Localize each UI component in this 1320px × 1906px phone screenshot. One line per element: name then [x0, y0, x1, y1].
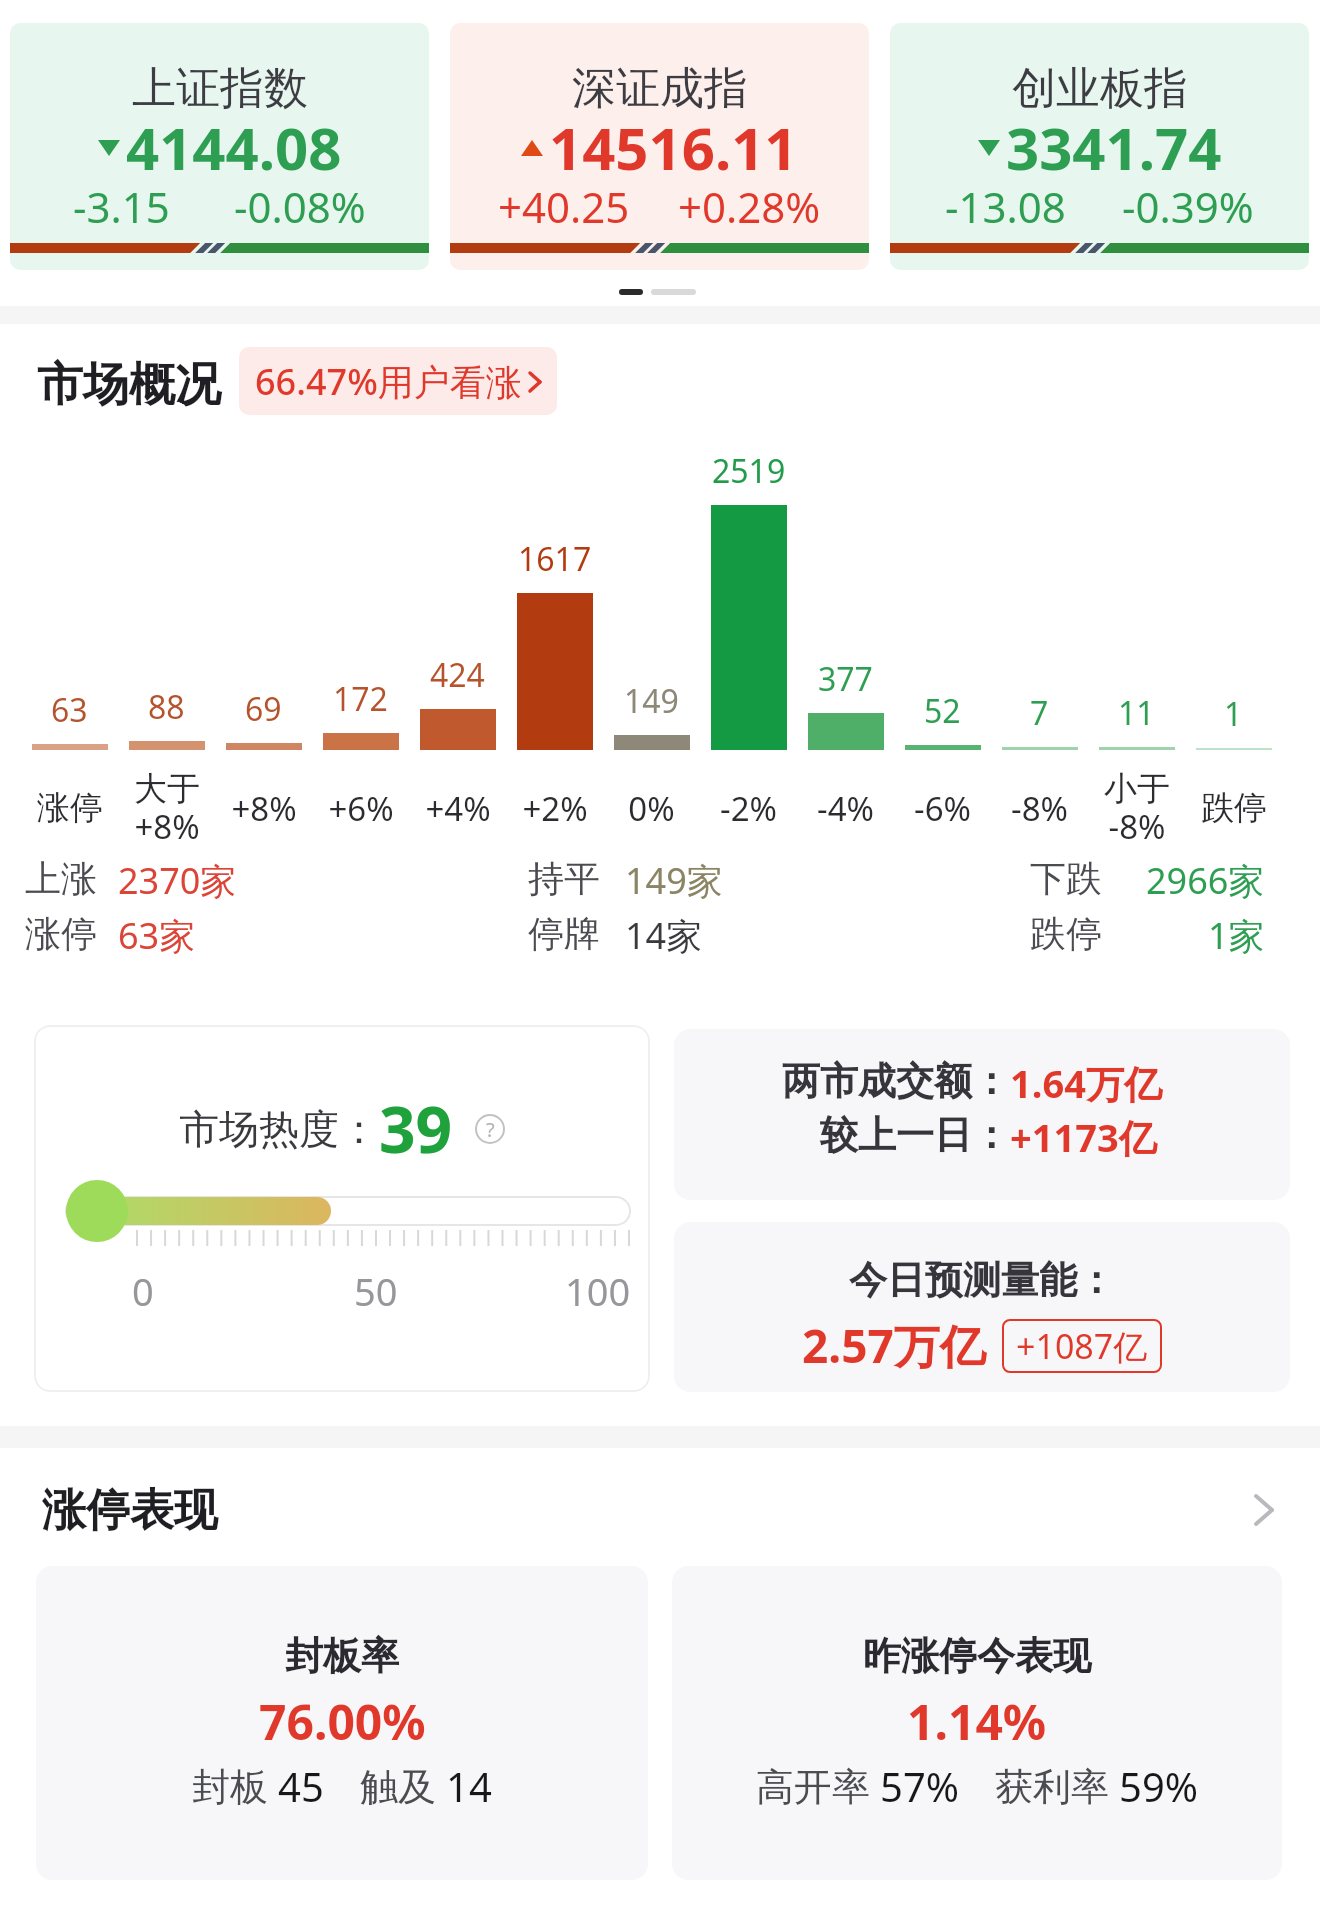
staticText: 1.14%	[907, 1689, 1047, 1754]
staticText: 涨停表现	[42, 1483, 218, 1538]
staticText: 424	[430, 653, 485, 697]
staticText: 上涨	[25, 856, 97, 901]
staticText: 两市成交额：	[782, 1057, 1010, 1105]
staticText: 深证成指	[572, 61, 748, 116]
staticText: -4%	[817, 786, 874, 831]
staticText: 39	[379, 1085, 453, 1172]
button[interactable]: 昨涨停今表现	[672, 1566, 1282, 1880]
staticText: 市场热度：	[179, 1104, 379, 1154]
button[interactable]: 今日预测量能：	[674, 1222, 1290, 1392]
staticText: +40.25	[498, 178, 630, 235]
staticText: 市场概况	[37, 356, 221, 414]
staticText: 149	[624, 679, 679, 723]
staticText: 2.57万亿	[802, 1314, 986, 1377]
staticText: 1家	[1208, 911, 1265, 960]
staticText: 0%	[628, 786, 675, 831]
staticText: 较上一日：	[820, 1111, 1010, 1159]
staticText: 封板率	[285, 1632, 399, 1680]
staticText: 大于 +8%	[134, 768, 200, 848]
staticText: 昨涨停今表现	[863, 1632, 1091, 1680]
staticText: 停牌	[528, 911, 600, 956]
staticText: 涨停	[25, 911, 97, 956]
staticText: -3.15	[73, 178, 170, 235]
staticText: 57%	[880, 1759, 959, 1813]
staticText: 172	[333, 677, 388, 721]
button[interactable]: 上证指数	[10, 23, 429, 270]
staticText: 获利率	[995, 1759, 1119, 1811]
button[interactable]: 创业板指	[890, 23, 1309, 270]
staticText: 跌停	[1030, 911, 1102, 956]
staticText: 50	[354, 1265, 398, 1317]
staticText: 149家	[625, 856, 723, 905]
staticText: 下跌	[1030, 856, 1102, 901]
staticText: 45	[278, 1759, 324, 1813]
staticText: 52	[924, 689, 961, 733]
staticText: 63	[51, 688, 88, 732]
button[interactable]: 66.47%用户看涨	[239, 347, 557, 415]
staticText: 小于 -8%	[1104, 768, 1170, 848]
staticText: 377	[818, 657, 873, 701]
staticText: 上证指数	[132, 61, 308, 116]
staticText: 3341.74	[1006, 108, 1222, 187]
staticText: +0.28%	[678, 178, 821, 235]
staticText: 4144.08	[126, 108, 342, 187]
staticText: +8%	[231, 786, 297, 831]
staticText: 2966家	[1146, 856, 1265, 905]
staticText: 2370家	[118, 856, 237, 905]
staticText: 11	[1118, 691, 1155, 735]
staticText: 封板	[192, 1759, 278, 1811]
staticText: -2%	[720, 786, 777, 831]
staticText: 1	[1224, 692, 1243, 736]
staticText: 14家	[625, 911, 703, 960]
staticText: 14516.11	[549, 108, 798, 187]
staticText: -0.39%	[1122, 178, 1254, 235]
staticText: 1.64万亿	[1010, 1057, 1162, 1109]
staticText: +6%	[328, 786, 394, 831]
staticText: 0	[132, 1265, 154, 1317]
staticText: 持平	[528, 856, 600, 901]
staticText: 63家	[118, 911, 196, 960]
button[interactable]: 两市成交额：	[674, 1029, 1290, 1200]
staticText: -8%	[1011, 786, 1068, 831]
staticText: 76.00%	[259, 1689, 426, 1754]
staticText: 2519	[712, 449, 786, 493]
button[interactable]: 涨停表现	[0, 1480, 1320, 1540]
button[interactable]: 封板率	[36, 1566, 648, 1880]
staticText: 跌停	[1201, 787, 1267, 829]
staticText: 今日预测量能：	[849, 1256, 1115, 1304]
staticText: 1617	[518, 537, 592, 581]
staticText: +2%	[522, 786, 588, 831]
staticText: -0.08%	[234, 178, 366, 235]
button[interactable]: 市场热度：	[34, 1025, 650, 1392]
staticText: 88	[148, 685, 185, 729]
staticText: 69	[245, 687, 282, 731]
button[interactable]: 深证成指	[450, 23, 869, 270]
staticText: 涨停	[37, 787, 103, 829]
staticText: 高开率	[756, 1759, 880, 1811]
staticText: 14	[446, 1759, 492, 1813]
staticText: +1087亿	[1016, 1323, 1148, 1369]
staticText: 100	[565, 1265, 631, 1317]
staticText: 59%	[1119, 1759, 1198, 1813]
staticText: 创业板指	[1012, 61, 1188, 116]
staticText: 66.47%用户看涨	[255, 357, 522, 406]
staticText: -13.08	[945, 178, 1066, 235]
staticText: 触及	[360, 1759, 446, 1811]
staticText: 7	[1030, 691, 1049, 735]
staticText: -6%	[914, 786, 971, 831]
staticText: ?	[486, 1116, 495, 1143]
staticText: +4%	[425, 786, 491, 831]
staticText: +1173亿	[1010, 1111, 1157, 1163]
